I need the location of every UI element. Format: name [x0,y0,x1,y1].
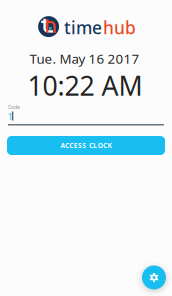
staticText: Code [8,103,20,111]
staticText: ACCESS CLOCK [61,141,111,150]
button[interactable]: ACCESS CLOCK [7,136,165,155]
staticText: 10:22 AM [27,68,142,103]
staticText: time [64,16,102,39]
staticText: 1 [7,110,12,123]
staticText: Tue. May 16 2017 [29,50,139,67]
button[interactable]: Settings [142,265,166,289]
staticText: hub [103,16,136,39]
